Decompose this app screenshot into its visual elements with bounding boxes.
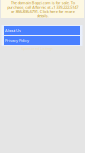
staticText: The domain Bopzi.com is for sale. To pur…	[7, 0, 78, 18]
staticText: About Us	[5, 28, 21, 33]
button[interactable]: About Us	[1, 25, 82, 36]
button[interactable]: The domain Bopzi.com is for sale. To pur…	[1, 0, 84, 18]
staticText: Sponsored Listings	[21, 46, 53, 51]
button[interactable]: Privacy Policy	[1, 35, 82, 46]
staticText: Privacy Policy	[5, 38, 29, 43]
